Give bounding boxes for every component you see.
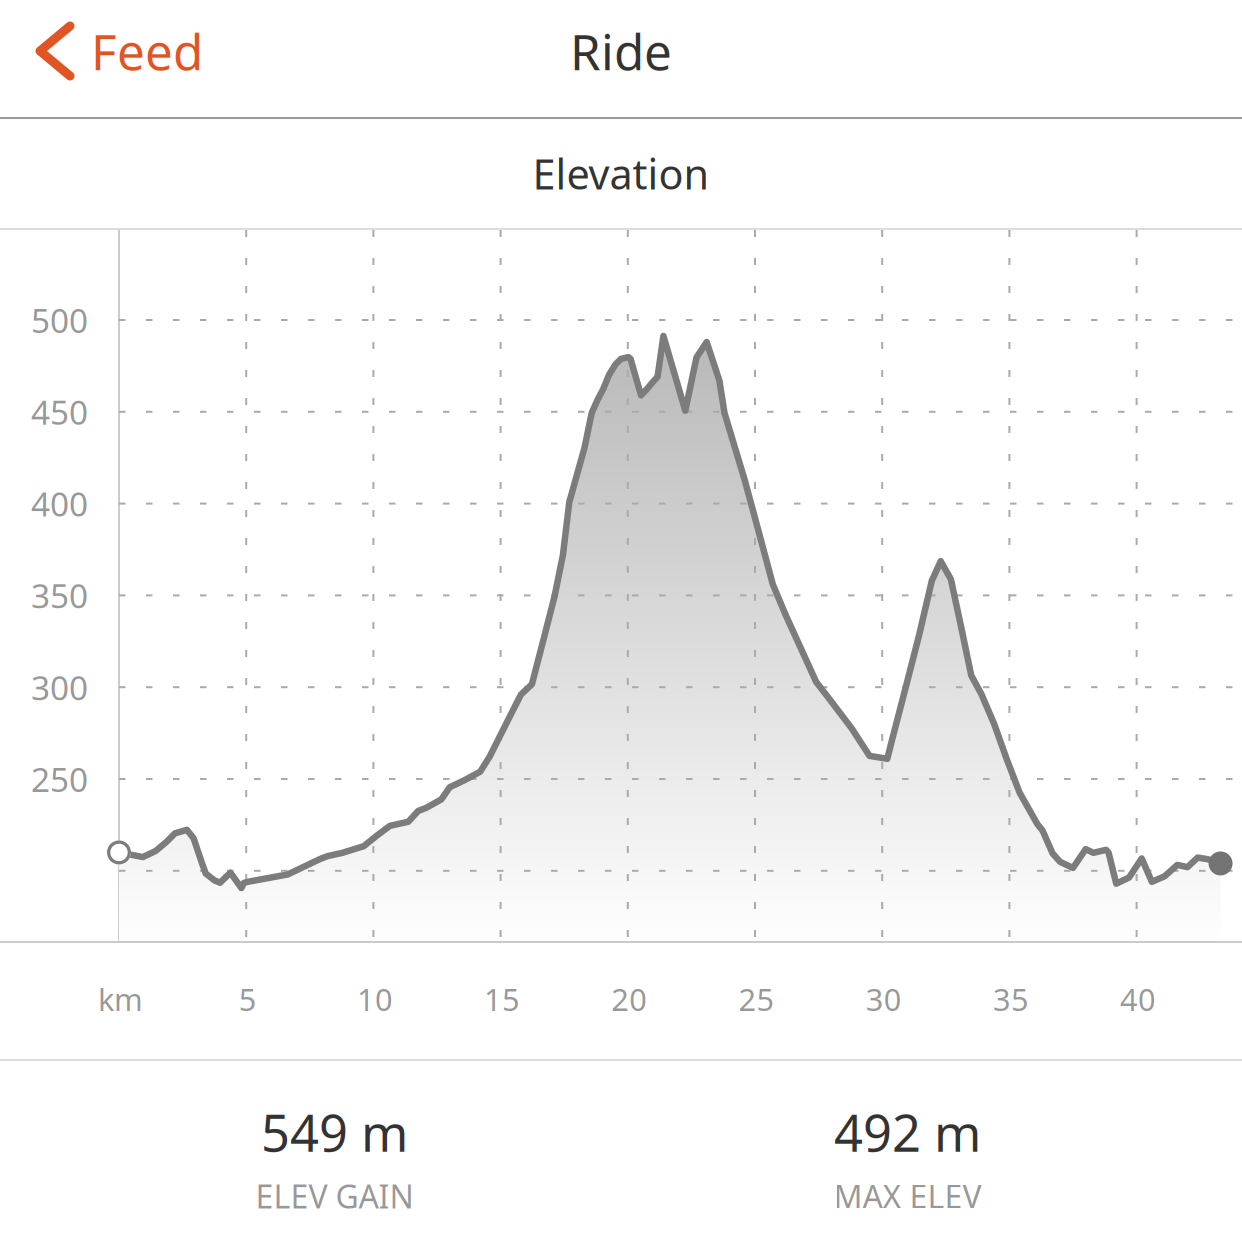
staticText: 450 <box>31 390 88 434</box>
staticText: ELEV GAIN <box>255 1175 413 1217</box>
staticText: Ride <box>570 18 672 84</box>
staticText: MAX ELEV <box>833 1175 981 1217</box>
staticText: km <box>98 979 143 1019</box>
staticText: 10 <box>357 979 393 1019</box>
staticText: 500 <box>31 298 88 342</box>
staticText: 549 m <box>261 1098 408 1166</box>
staticText: 350 <box>31 573 88 618</box>
button[interactable]: Feed <box>0 0 240 117</box>
staticText: Elevation <box>532 146 709 201</box>
staticText: 400 <box>31 481 88 526</box>
staticText: 492 m <box>834 1098 981 1166</box>
staticText: 20 <box>611 979 647 1019</box>
staticText: Feed <box>91 18 203 84</box>
staticText: 5 <box>239 979 257 1019</box>
staticText: 25 <box>738 979 774 1019</box>
staticText: 15 <box>484 979 520 1019</box>
staticText: 300 <box>31 665 88 709</box>
staticText: 40 <box>1120 979 1156 1019</box>
staticText: 250 <box>31 757 88 801</box>
staticText: 35 <box>993 979 1029 1019</box>
staticText: 30 <box>866 979 902 1019</box>
